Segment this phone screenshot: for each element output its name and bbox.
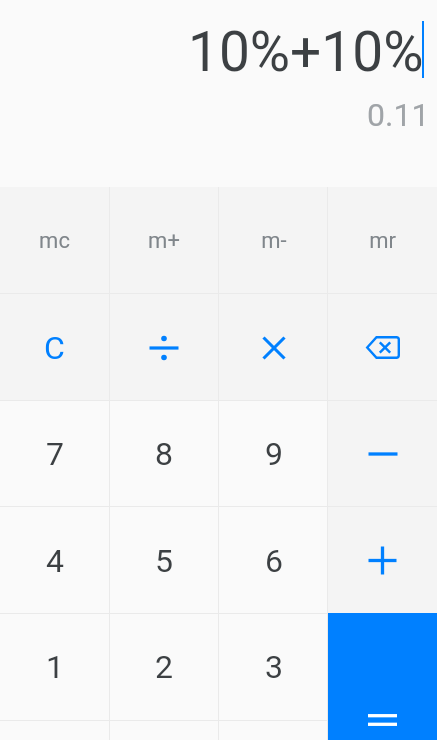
button[interactable]: Multiply (219, 294, 328, 401)
button[interactable]: m+ (109, 187, 218, 294)
staticText: 5 (155, 542, 173, 580)
button[interactable]: 2 (109, 613, 218, 720)
button[interactable]: 7 (0, 400, 109, 507)
button[interactable]: Divide (109, 294, 218, 401)
button[interactable]: Plus (328, 507, 437, 614)
staticText: mr (369, 228, 396, 254)
button[interactable]: Equals (328, 613, 437, 740)
staticText: 1 (46, 648, 64, 686)
button[interactable]: Minus (328, 400, 437, 507)
button[interactable]: % (219, 720, 328, 740)
staticText: 7 (46, 435, 64, 473)
staticText: 10%+10% (188, 20, 424, 84)
button[interactable]: C (0, 294, 109, 401)
button[interactable]: 6 (219, 507, 328, 614)
button[interactable]: 1 (0, 613, 109, 720)
staticText: C (44, 329, 65, 367)
button[interactable]: mr (328, 187, 437, 294)
button[interactable]: 3 (219, 613, 328, 720)
staticText: 6 (265, 542, 283, 580)
button[interactable]: . (109, 720, 218, 740)
staticText: 2 (155, 648, 173, 686)
button[interactable]: 0 (0, 720, 109, 740)
button[interactable]: 5 (109, 507, 218, 614)
button[interactable]: 9 (219, 400, 328, 507)
button[interactable]: 4 (0, 507, 109, 614)
staticText: m- (261, 228, 287, 254)
staticText: 8 (155, 435, 173, 473)
staticText: mc (39, 228, 70, 254)
staticText: 9 (265, 435, 283, 473)
button[interactable]: 8 (109, 400, 218, 507)
staticText: m+ (148, 228, 180, 254)
staticText: 3 (265, 648, 283, 686)
button[interactable]: Backspace (328, 294, 437, 401)
button[interactable]: mc (0, 187, 109, 294)
button[interactable]: m- (219, 187, 328, 294)
staticText: 0.11 (367, 96, 430, 134)
staticText: 4 (46, 542, 64, 580)
